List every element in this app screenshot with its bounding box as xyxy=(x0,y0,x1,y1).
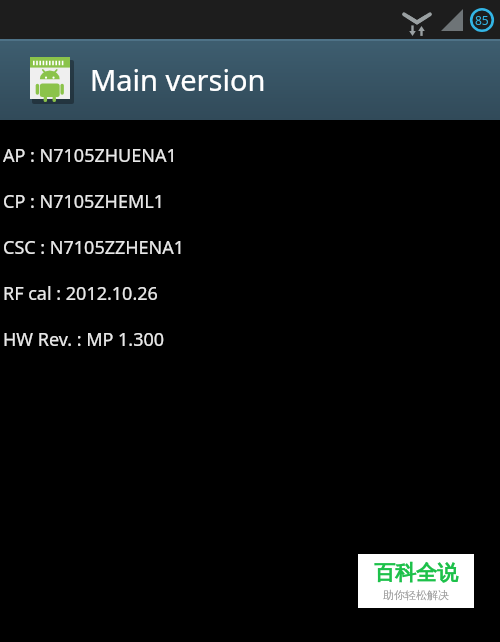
staticText: 助你轻松解决 xyxy=(383,588,449,602)
button[interactable]: AP : N7105ZHUENA1 xyxy=(0,132,500,178)
staticText: CP : N7105ZHEML1 xyxy=(3,189,165,214)
button[interactable]: Main version xyxy=(0,39,500,120)
staticText: 百科全说 xyxy=(374,560,458,586)
button[interactable]: CSC : N7105ZZHENA1 xyxy=(0,224,500,270)
staticText: AP : N7105ZHUENA1 xyxy=(3,143,177,168)
button[interactable]: CP : N7105ZHEML1 xyxy=(0,178,500,224)
staticText: RF cal : 2012.10.26 xyxy=(3,281,158,306)
button[interactable]: RF cal : 2012.10.26 xyxy=(0,270,500,316)
button[interactable]: HW Rev. : MP 1.300 xyxy=(0,316,500,362)
staticText: CSC : N7105ZZHENA1 xyxy=(3,235,185,260)
staticText: Main version xyxy=(90,60,266,99)
staticText: 85 xyxy=(475,12,489,28)
staticText: HW Rev. : MP 1.300 xyxy=(3,327,165,352)
